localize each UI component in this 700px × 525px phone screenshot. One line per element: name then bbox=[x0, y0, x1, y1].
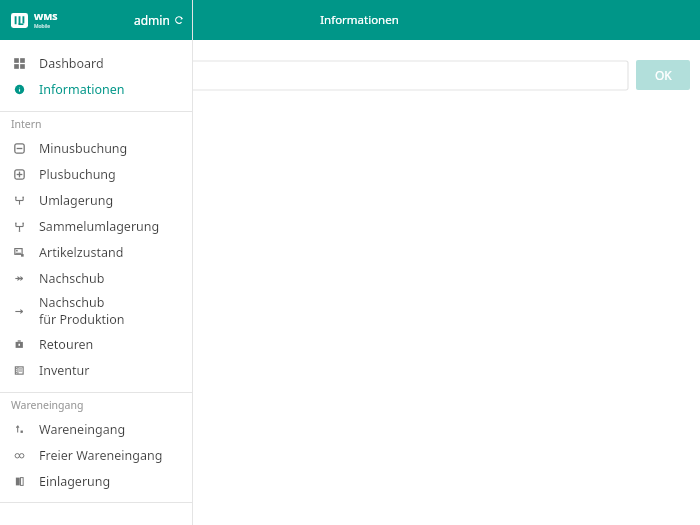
staticText: Intern bbox=[11, 117, 42, 131]
staticText: admin bbox=[134, 12, 170, 28]
button[interactable] bbox=[0, 61, 628, 90]
staticText: Minusbuchung bbox=[39, 140, 128, 157]
staticText: Mobile bbox=[34, 23, 51, 30]
staticText: Sammelumlagerung bbox=[39, 218, 160, 235]
staticText: OK bbox=[655, 67, 672, 83]
button[interactable]: Inventur bbox=[0, 357, 193, 383]
staticText: Artikelzustand bbox=[39, 244, 124, 261]
staticText: Wareneingang bbox=[11, 398, 84, 412]
button[interactable]: Retouren bbox=[0, 331, 193, 357]
button[interactable]: Umlagerung bbox=[0, 187, 193, 213]
button[interactable]: Wareneingang bbox=[0, 416, 193, 442]
staticText: Informationen bbox=[39, 81, 125, 98]
other: Refresh session bbox=[174, 15, 184, 25]
button[interactable]: Freier Wareneingang bbox=[0, 442, 193, 468]
staticText: für Produktion bbox=[39, 311, 125, 328]
button[interactable]: Minusbuchung bbox=[0, 135, 193, 161]
staticText: Informationen bbox=[320, 12, 399, 28]
staticText: WMS bbox=[34, 10, 58, 23]
button[interactable]: Sammelumlagerung bbox=[0, 213, 193, 239]
staticText: Retouren bbox=[39, 336, 94, 353]
button[interactable]: Dashboard bbox=[0, 50, 193, 76]
staticText: Inventur bbox=[39, 362, 90, 379]
staticText: Wareneingang bbox=[39, 421, 126, 438]
button[interactable]: Einlagerung bbox=[0, 468, 193, 494]
staticText: Nachschub bbox=[39, 270, 105, 287]
staticText: Umlagerung bbox=[39, 192, 114, 209]
button[interactable]: admin bbox=[134, 12, 184, 28]
button[interactable]: Nachschub bbox=[0, 291, 193, 331]
button[interactable]: Plusbuchung bbox=[0, 161, 193, 187]
button[interactable]: Artikelzustand bbox=[0, 239, 193, 265]
staticText: Plusbuchung bbox=[39, 166, 116, 183]
button[interactable]: Informationen bbox=[0, 76, 193, 102]
staticText: Nachschub bbox=[39, 294, 105, 311]
staticText: Dashboard bbox=[39, 55, 104, 72]
button[interactable]: Nachschub bbox=[0, 265, 193, 291]
staticText: Einlagerung bbox=[39, 473, 111, 490]
staticText: Freier Wareneingang bbox=[39, 447, 163, 464]
button[interactable]: OK bbox=[636, 60, 690, 90]
